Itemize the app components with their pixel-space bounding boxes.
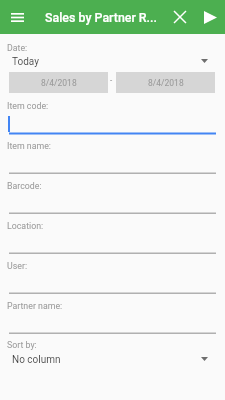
staticText: Date: <box>7 43 28 53</box>
staticText: Item code: <box>7 101 49 111</box>
button[interactable] <box>9 170 216 178</box>
button[interactable]: 8/4/2018 <box>9 72 108 93</box>
button[interactable] <box>9 290 216 298</box>
button[interactable] <box>9 210 216 218</box>
staticText: 8/4/2018 <box>41 78 77 88</box>
staticText: Location: <box>7 221 44 231</box>
button[interactable]: Run report <box>197 4 223 30</box>
button[interactable]: Close <box>167 4 193 30</box>
staticText: No column <box>12 354 61 366</box>
staticText: Today <box>12 56 39 68</box>
button[interactable] <box>9 330 216 338</box>
staticText: Item name: <box>7 141 51 151</box>
button[interactable] <box>9 129 216 138</box>
button[interactable] <box>9 250 216 258</box>
staticText: - <box>110 76 113 85</box>
button[interactable]: 8/4/2018 <box>116 72 215 93</box>
button[interactable]: Expand dropdown <box>193 50 216 72</box>
staticText: Barcode: <box>7 181 42 191</box>
staticText: 8/4/2018 <box>148 78 184 88</box>
button[interactable]: Open navigation menu <box>5 5 30 30</box>
staticText: Sales by Partner R... <box>45 10 165 25</box>
staticText: User: <box>7 261 28 271</box>
staticText: Sort by: <box>7 340 37 350</box>
staticText: Partner name: <box>7 301 63 311</box>
button[interactable]: Expand dropdown <box>193 348 216 370</box>
